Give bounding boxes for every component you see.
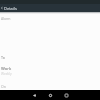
button[interactable]: Navigate up	[0, 4, 4, 12]
button[interactable]: Home	[42, 90, 58, 100]
staticText: Work	[1, 66, 12, 72]
button[interactable]: Back	[26, 90, 42, 100]
staticText: Alarm	[1, 16, 11, 21]
button[interactable]: Work	[0, 66, 100, 76]
button[interactable]: Recent apps	[58, 90, 74, 100]
staticText: On	[1, 84, 6, 89]
button[interactable]: On	[0, 84, 100, 90]
staticText: Weekly	[1, 72, 12, 76]
staticText: To	[1, 55, 5, 60]
staticText: Details	[4, 6, 17, 11]
button[interactable]: To	[0, 55, 100, 61]
